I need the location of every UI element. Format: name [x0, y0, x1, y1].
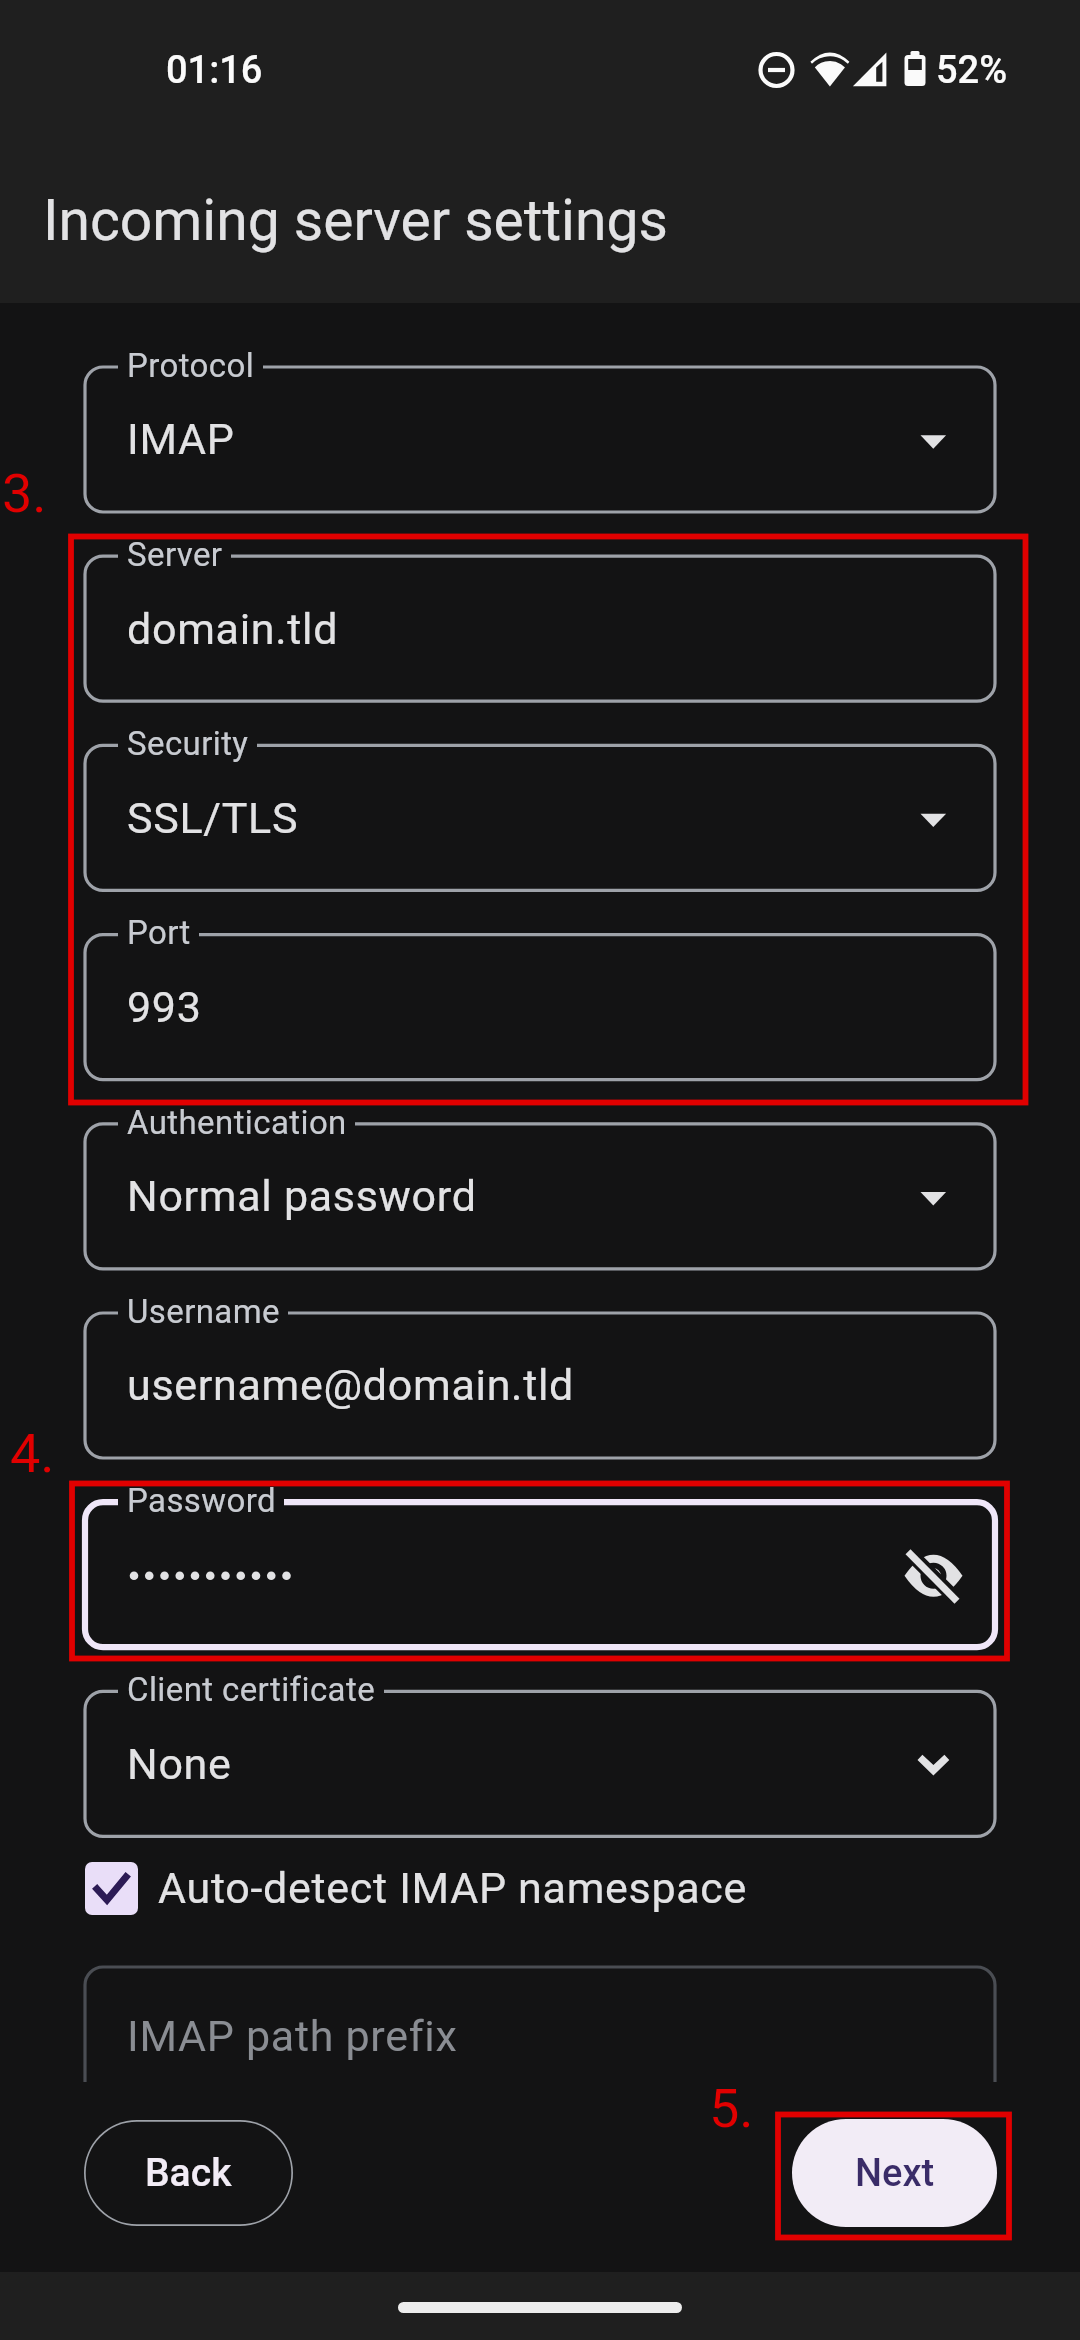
- staticText: Incoming server settings: [43, 187, 668, 254]
- staticText: Back: [145, 2150, 232, 2196]
- staticText: Authentication: [127, 1103, 347, 1142]
- button[interactable]: Auto-detect IMAP namespace: [85, 1850, 748, 1926]
- staticText: IMAP path prefix: [127, 2011, 458, 2061]
- staticText: Port: [127, 913, 191, 952]
- staticText: Normal password: [127, 1171, 477, 1221]
- staticText: 4.: [10, 1422, 55, 1485]
- button[interactable]: [85, 536, 995, 721]
- staticText: Security: [127, 724, 249, 763]
- staticText: Server: [127, 535, 223, 574]
- button[interactable]: Next: [792, 2119, 997, 2227]
- button[interactable]: [85, 347, 995, 532]
- button[interactable]: IMAP path prefix: [0, 1950, 1080, 2082]
- button[interactable]: Show password: [885, 1526, 982, 1623]
- button[interactable]: [85, 1103, 995, 1288]
- button[interactable]: [85, 1670, 995, 1855]
- staticText: IMAP: [127, 414, 235, 464]
- staticText: 01:16: [166, 48, 263, 93]
- button[interactable]: Back: [84, 2120, 293, 2226]
- staticText: Auto-detect IMAP namespace: [158, 1863, 748, 1913]
- button[interactable]: [85, 914, 995, 1099]
- staticText: None: [127, 1739, 232, 1789]
- staticText: Client certificate: [127, 1670, 376, 1709]
- staticText: 5.: [709, 2077, 754, 2140]
- staticText: 3.: [2, 462, 47, 525]
- staticText: Next: [855, 2151, 935, 2196]
- staticText: Password: [127, 1481, 276, 1520]
- button[interactable]: [85, 1481, 995, 1666]
- staticText: username@domain.tld: [127, 1360, 575, 1410]
- staticText: SSL/TLS: [127, 793, 299, 843]
- staticText: domain.tld: [127, 604, 339, 654]
- staticText: Protocol: [127, 346, 255, 385]
- button[interactable]: [85, 725, 995, 910]
- staticText: 52%: [936, 48, 1008, 93]
- button[interactable]: [85, 1292, 995, 1477]
- staticText: 993: [127, 982, 202, 1032]
- staticText: Username: [127, 1292, 280, 1331]
